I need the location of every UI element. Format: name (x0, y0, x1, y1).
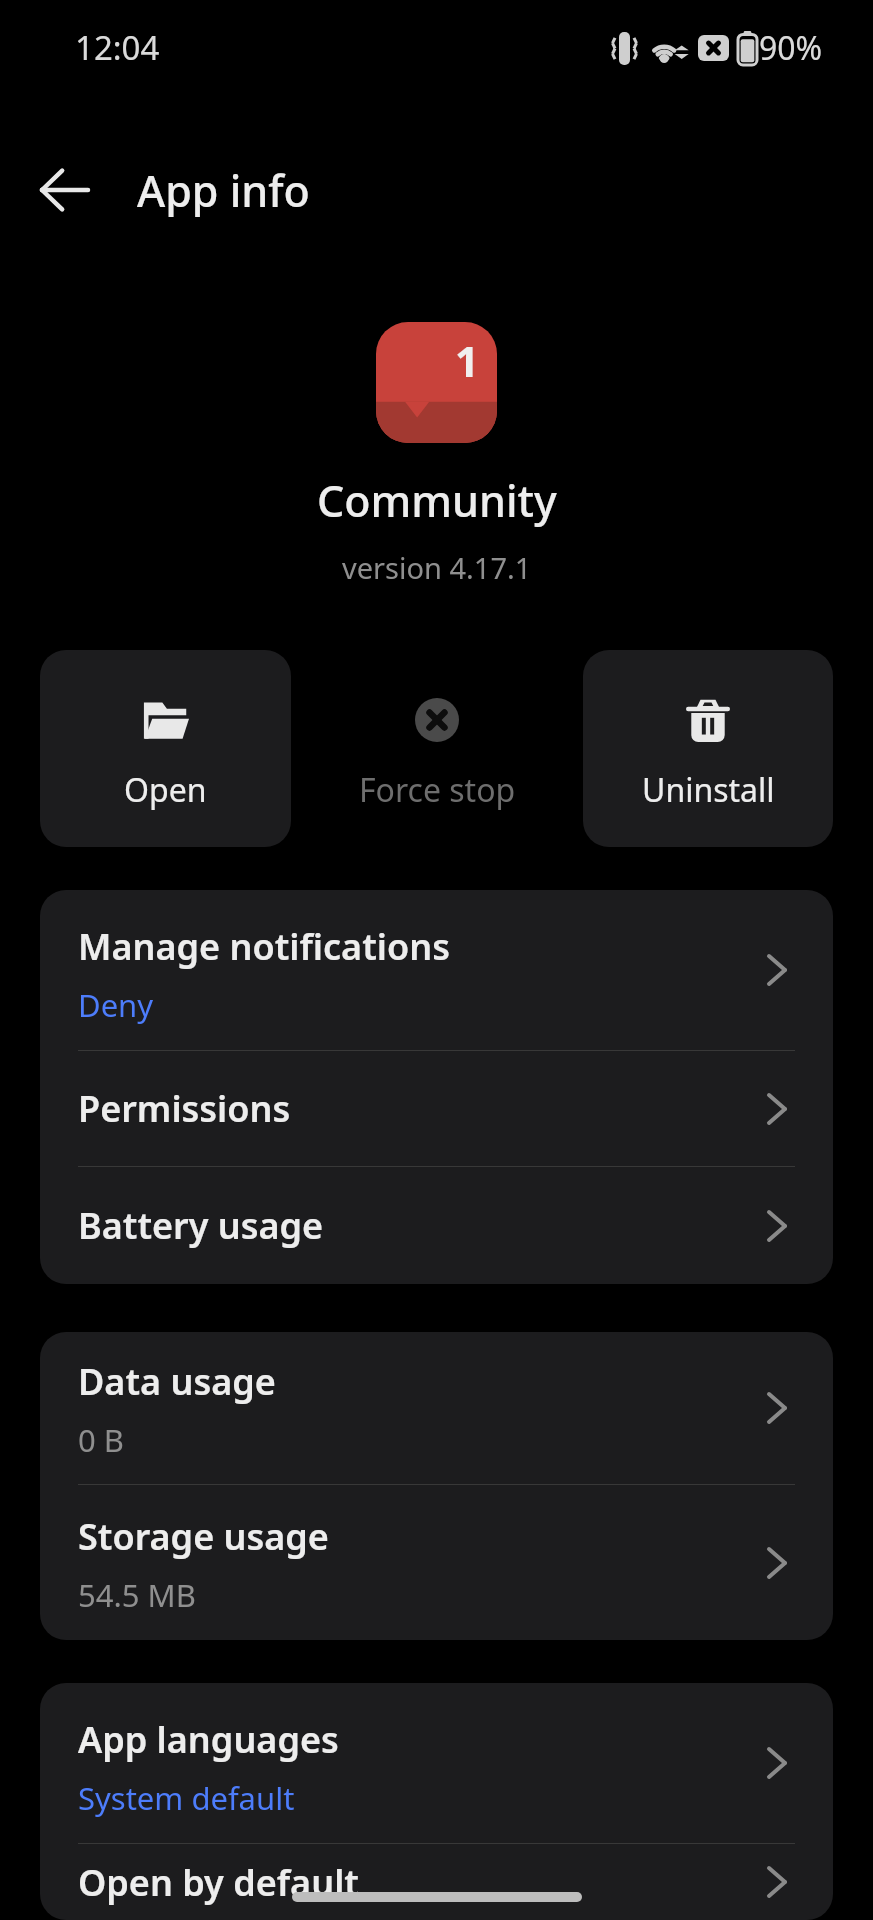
button[interactable] (30, 155, 100, 225)
staticText: System default (78, 1777, 295, 1819)
button[interactable]: App languages (40, 1683, 833, 1843)
button[interactable]: Storage usage (40, 1485, 833, 1640)
button[interactable]: Manage notifications (40, 890, 833, 1050)
staticText: version 4.17.1 (342, 548, 532, 587)
button[interactable]: Open (40, 650, 291, 847)
button[interactable]: Uninstall (583, 650, 833, 847)
staticText: Permissions (78, 1084, 291, 1133)
staticText: App languages (78, 1715, 339, 1764)
button[interactable]: Permissions (40, 1051, 833, 1166)
staticText: 1 (455, 332, 480, 389)
staticText: 12:04 (75, 25, 160, 70)
button[interactable]: Data usage (40, 1332, 833, 1484)
staticText: Force stop (359, 768, 516, 812)
staticText: App info (137, 161, 310, 220)
staticText: Community (317, 471, 557, 530)
staticText: 0 B (78, 1419, 124, 1461)
staticText: Storage usage (78, 1512, 329, 1561)
button[interactable]: Battery usage (40, 1167, 833, 1284)
staticText: Deny (78, 984, 154, 1026)
staticText: 54.5 MB (78, 1574, 196, 1616)
staticText: 90% (759, 26, 823, 70)
staticText: Open (124, 768, 207, 812)
staticText: Open by default (78, 1858, 359, 1907)
button[interactable]: Open by default (40, 1844, 833, 1920)
staticText: Battery usage (78, 1201, 324, 1250)
button[interactable]: Force stop (312, 650, 562, 847)
staticText: Data usage (78, 1357, 276, 1406)
staticText: Manage notifications (78, 922, 450, 971)
staticText: Uninstall (642, 768, 775, 812)
